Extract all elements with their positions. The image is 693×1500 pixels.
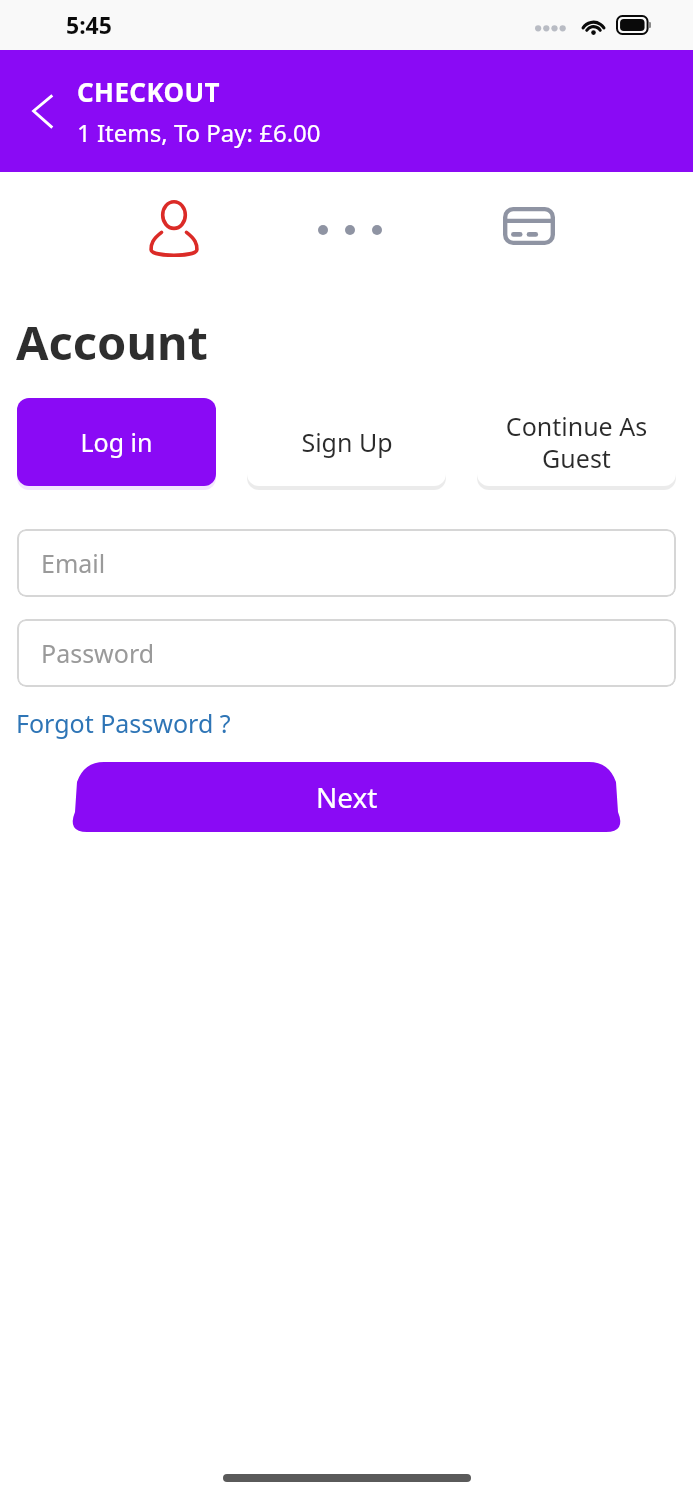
staticText: Continue As Guest xyxy=(485,409,668,475)
staticText: Account xyxy=(16,310,208,374)
staticText: Log in xyxy=(80,425,153,459)
staticText: Next xyxy=(316,778,378,816)
button[interactable]: Sign Up xyxy=(247,398,446,486)
button[interactable]: Password xyxy=(17,619,676,687)
button[interactable]: Email xyxy=(17,529,676,597)
staticText: Forgot Password ? xyxy=(16,706,231,740)
staticText: Password xyxy=(41,636,155,670)
button[interactable]: Forgot Password ? xyxy=(16,706,231,740)
staticText: 5:45 xyxy=(66,9,112,40)
button[interactable]: Log in xyxy=(17,398,216,486)
button[interactable]: Payment step xyxy=(503,207,555,245)
button[interactable]: Next xyxy=(67,762,626,832)
staticText: CHECKOUT xyxy=(77,74,221,109)
staticText: Sign Up xyxy=(301,425,393,459)
button[interactable]: Continue As Guest xyxy=(477,398,676,486)
staticText: Email xyxy=(41,546,106,580)
staticText: 1 Items, To Pay: £6.00 xyxy=(77,116,321,149)
button[interactable]: Account step xyxy=(145,198,203,260)
button[interactable]: Back xyxy=(18,85,70,137)
